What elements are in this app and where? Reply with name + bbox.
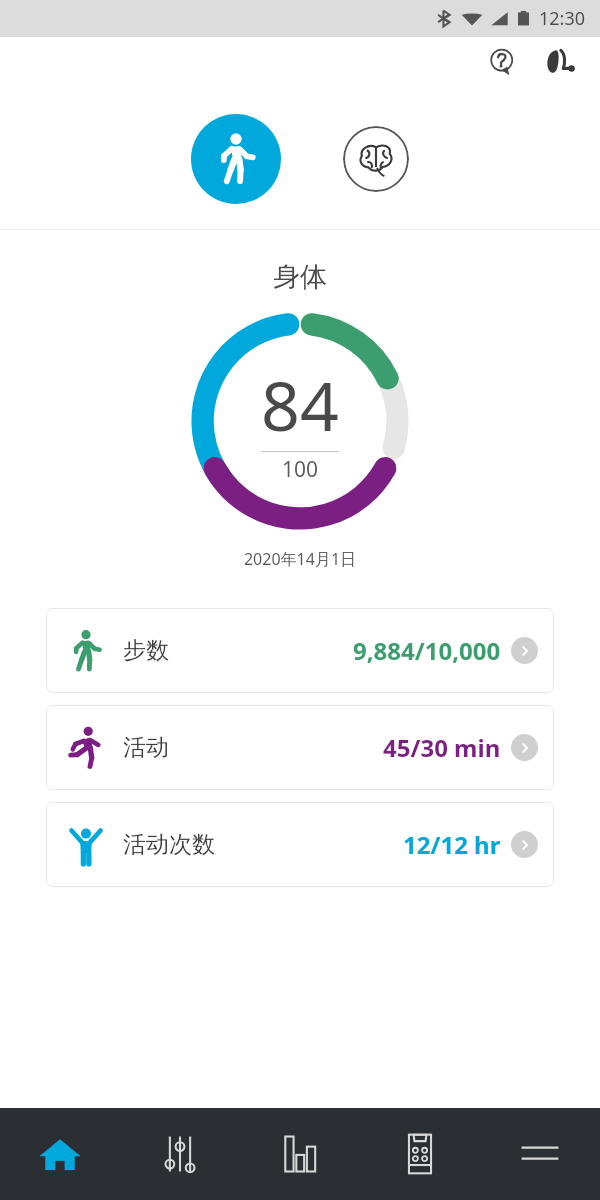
staticText: 45/30 min	[383, 731, 501, 764]
staticText: 9,884/10,000	[353, 634, 501, 667]
button[interactable]: Remote	[360, 1108, 480, 1200]
staticText: 身体	[0, 260, 600, 294]
staticText: 2020年14月1日	[0, 548, 600, 570]
button[interactable]: Menu	[480, 1108, 600, 1200]
button[interactable]: Mind	[343, 126, 409, 192]
staticText: 12/12 hr	[403, 828, 501, 861]
button[interactable]: 活动	[46, 705, 554, 790]
staticText: 步数	[123, 636, 169, 665]
staticText: 12:30	[539, 6, 586, 31]
button[interactable]: Settings	[120, 1108, 240, 1200]
staticText: 84	[261, 358, 339, 451]
button[interactable]: Help	[482, 42, 524, 84]
staticText: 活动次数	[123, 830, 215, 859]
button[interactable]: Body	[191, 114, 281, 204]
button[interactable]: Home	[0, 1108, 120, 1200]
staticText: 100	[282, 455, 319, 484]
button[interactable]: 步数	[46, 608, 554, 693]
button[interactable]: 活动次数	[46, 802, 554, 887]
staticText: 活动	[123, 733, 169, 762]
button[interactable]: Statistics	[240, 1108, 360, 1200]
button[interactable]: Hearing aid	[536, 40, 582, 86]
